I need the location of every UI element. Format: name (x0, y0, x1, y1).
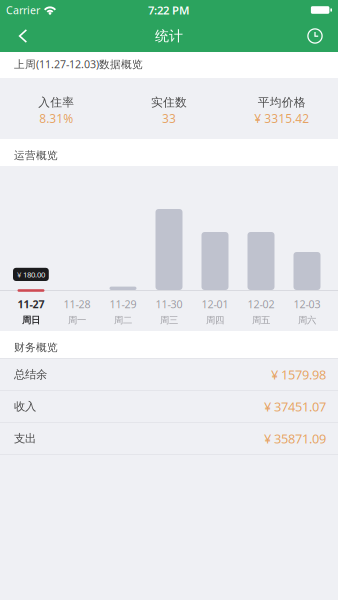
staticText: 33 (162, 110, 176, 127)
staticText: 12-03 (293, 297, 320, 311)
staticText: 周二 (114, 314, 132, 326)
staticText: 12-02 (247, 297, 274, 311)
button[interactable]: Back (2, 20, 44, 52)
staticText: 11-29 (109, 297, 136, 311)
staticText: 11-30 (155, 297, 182, 311)
staticText: 12-01 (201, 297, 228, 311)
staticText: 入住率 (38, 95, 74, 110)
staticText: ¥ 180.00 (17, 269, 45, 280)
button[interactable]: 总结余 (0, 359, 338, 391)
staticText: 财务概览 (14, 341, 58, 354)
button[interactable]: 支出 (0, 423, 338, 455)
button[interactable]: 收入 (0, 391, 338, 423)
staticText: 运营概览 (14, 149, 58, 162)
staticText: 周四 (206, 314, 224, 326)
staticText: 11-27 (17, 297, 44, 311)
staticText: Carrier (6, 3, 40, 17)
staticText: 8.31% (39, 110, 73, 127)
staticText: 周五 (252, 314, 270, 326)
staticText: 支出 (14, 431, 36, 446)
staticText: ¥ 3315.42 (254, 110, 309, 127)
staticText: 平均价格 (258, 95, 306, 110)
staticText: ¥ 37451.07 (264, 398, 326, 415)
staticText: 上周(11.27-12.03)数据概览 (14, 57, 143, 71)
staticText: 总结余 (14, 367, 47, 382)
staticText: 7:22 PM (148, 2, 190, 18)
staticText: 周日 (22, 314, 40, 326)
button[interactable]: History (294, 20, 336, 52)
staticText: 实住数 (151, 95, 187, 110)
staticText: ¥ 35871.09 (264, 430, 326, 447)
staticText: 周三 (160, 314, 178, 326)
staticText: 统计 (155, 27, 183, 45)
staticText: 收入 (14, 399, 36, 414)
staticText: 周一 (68, 314, 86, 326)
staticText: ¥ 1579.98 (271, 366, 326, 383)
staticText: 周六 (298, 314, 316, 326)
staticText: 11-28 (63, 297, 90, 311)
